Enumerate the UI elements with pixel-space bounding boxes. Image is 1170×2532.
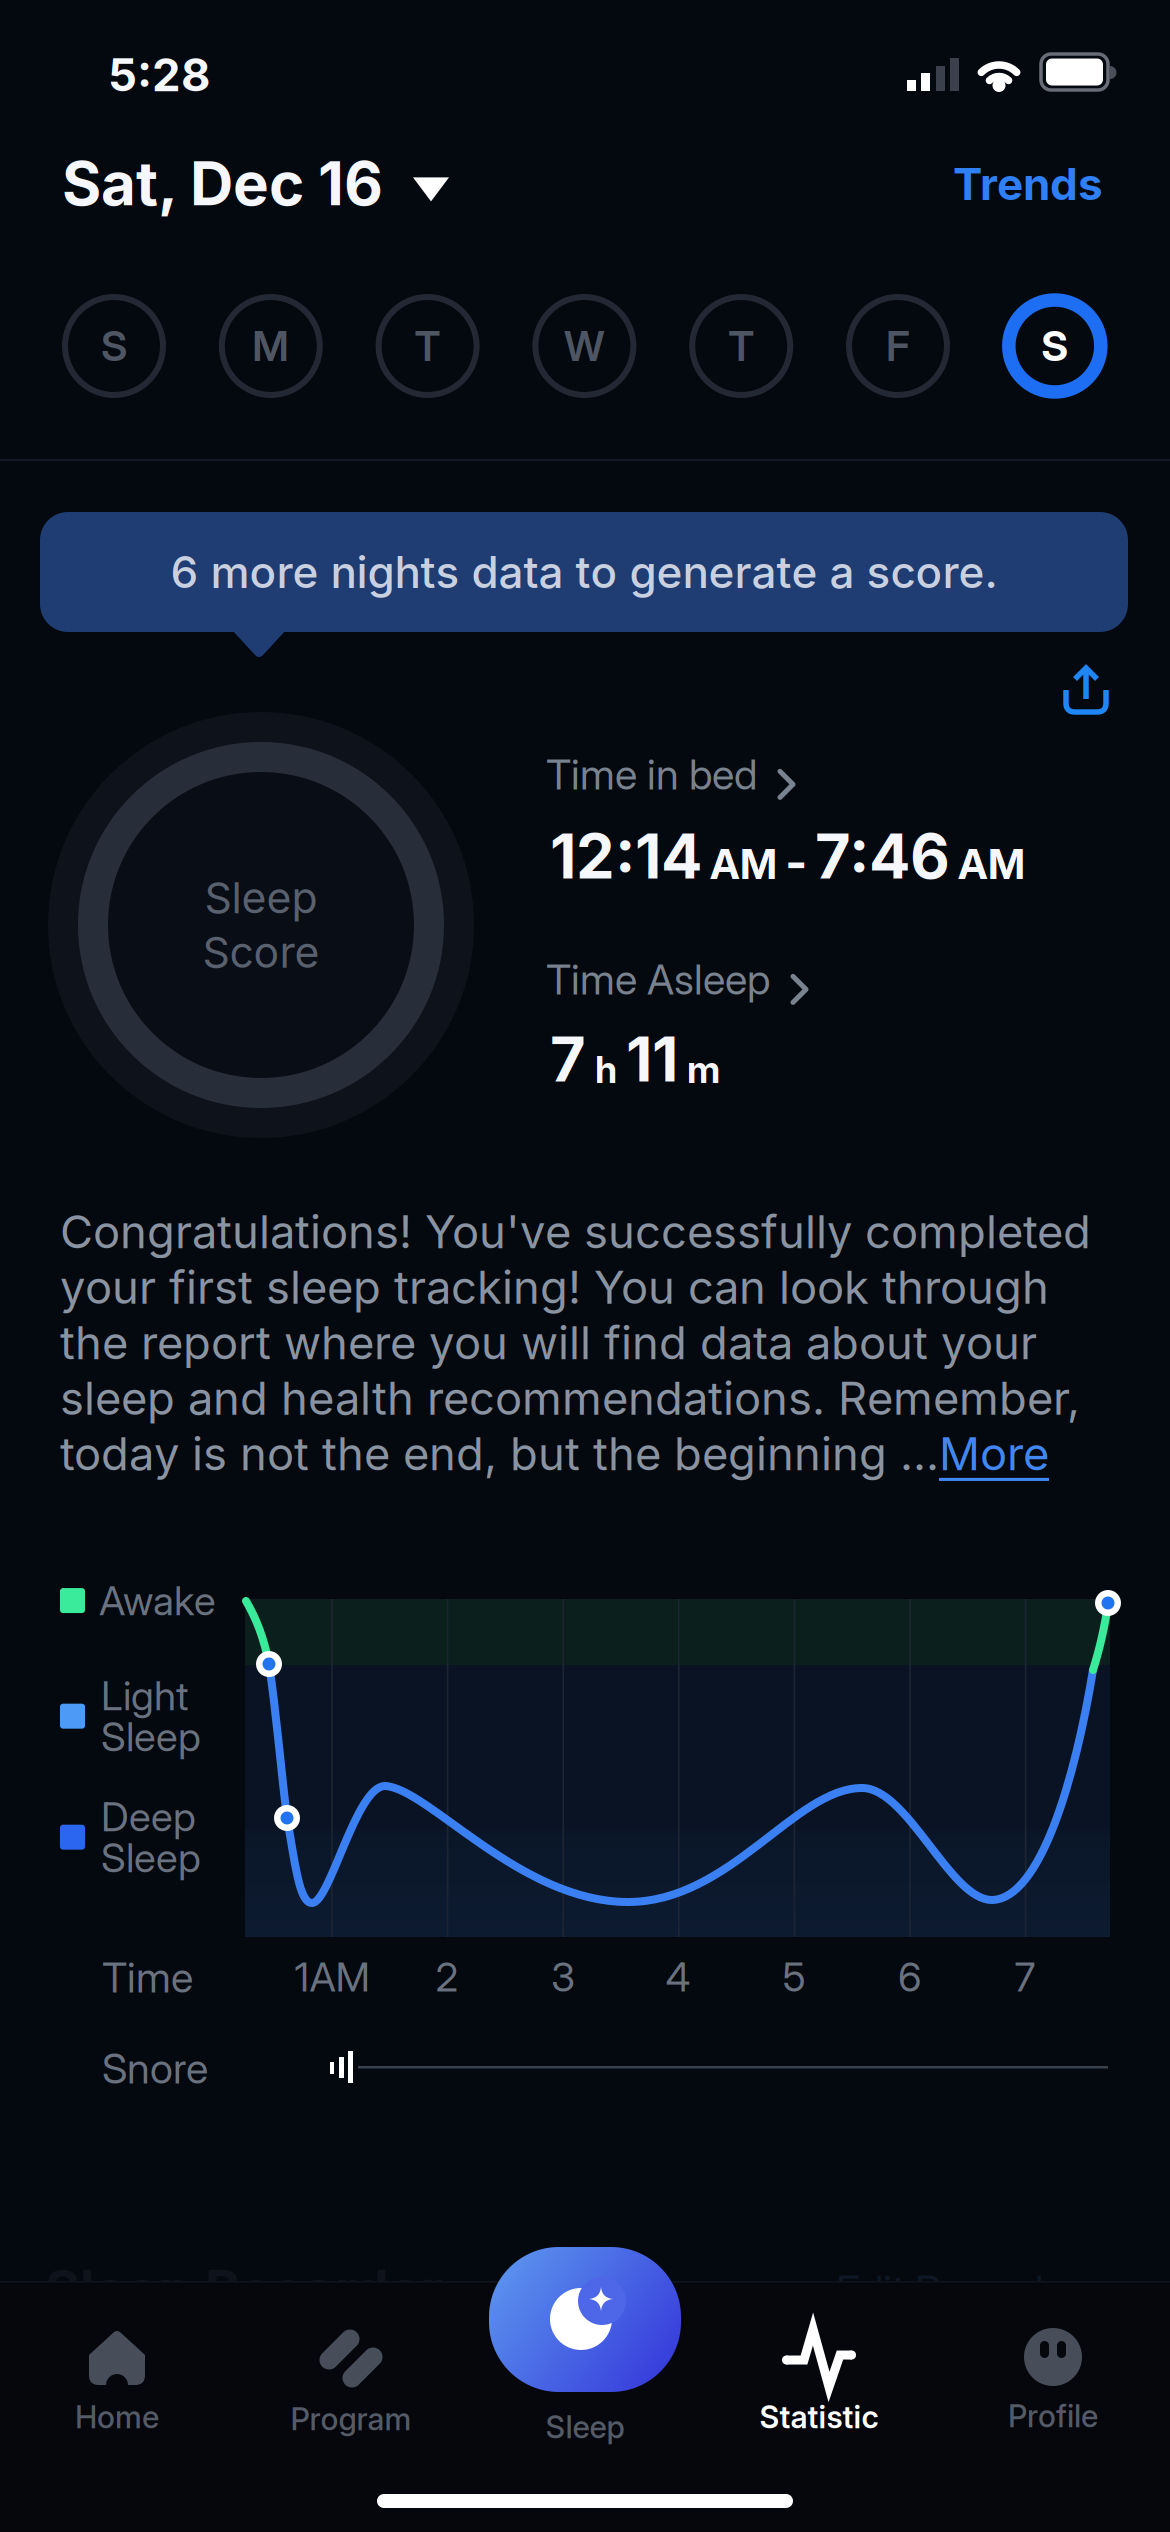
staticText: Edit Record	[836, 2266, 1043, 2315]
staticText: 4	[665, 1953, 690, 2001]
staticText: Sleep	[545, 2409, 624, 2445]
button[interactable]: T	[689, 294, 793, 398]
staticText: 6	[898, 1953, 922, 2001]
staticText: More	[939, 1427, 1049, 1480]
button[interactable]: More	[939, 1427, 1049, 1480]
staticText: Sleep Recorder	[45, 2258, 443, 2321]
staticText: 5:28	[108, 48, 211, 101]
staticText: Deep	[101, 1793, 196, 1840]
staticText: 2	[435, 1953, 458, 2001]
staticText: T	[415, 322, 441, 370]
button[interactable]: T	[376, 294, 480, 398]
staticText: 7	[1014, 1953, 1035, 2001]
staticText: Program	[290, 2401, 411, 2437]
staticText: Time	[102, 1953, 193, 2002]
staticText: F	[886, 322, 910, 370]
staticText: Profile	[1008, 2398, 1098, 2434]
staticText: W	[564, 322, 605, 370]
staticText: Sleep	[101, 1834, 201, 1881]
staticText: S	[101, 322, 127, 370]
staticText: Congratulations! You've successfully com…	[60, 1205, 1091, 1258]
staticText: 1AM	[294, 1953, 369, 2001]
button[interactable]: Trends	[953, 158, 1103, 210]
staticText: your first sleep tracking! You can look …	[60, 1260, 1049, 1314]
button[interactable]: F	[846, 294, 950, 398]
staticText: Trends	[953, 158, 1103, 210]
button[interactable]: M	[219, 294, 323, 398]
staticText: Snore	[102, 2044, 208, 2093]
button[interactable]: Home	[27, 2327, 207, 2435]
staticText: sleep and health recommendations. Rememb…	[60, 1371, 1080, 1425]
staticText: 3	[551, 1953, 575, 2001]
button[interactable]: Program	[251, 2329, 451, 2437]
staticText: 11	[626, 1023, 678, 1095]
button[interactable]	[1049, 652, 1123, 730]
staticText: 12:14	[550, 820, 702, 892]
staticText: m	[687, 1047, 720, 1091]
staticText: T	[728, 322, 754, 370]
staticText: Sleep	[101, 1713, 201, 1760]
button[interactable]	[489, 2247, 681, 2392]
button[interactable]: Time Asleep	[546, 955, 810, 1004]
staticText: AM	[958, 840, 1025, 888]
button[interactable]: Sat, Dec 16	[62, 148, 451, 219]
button[interactable]: 6 more nights data to generate a score.	[40, 512, 1128, 632]
staticText: M	[252, 322, 289, 370]
staticText: Sleep	[204, 873, 317, 923]
staticText: 7	[550, 1023, 586, 1095]
staticText: Time in bed	[546, 750, 757, 799]
staticText: Score	[202, 927, 319, 977]
staticText: AM	[710, 840, 777, 888]
staticText: Home	[75, 2399, 159, 2435]
staticText: Time Asleep	[546, 955, 770, 1004]
staticText: h	[595, 1047, 617, 1091]
staticText: today is not the end, but the beginning …	[60, 1427, 939, 1480]
staticText: Sat, Dec 16	[62, 148, 383, 219]
staticText: S	[1041, 322, 1068, 370]
staticText: 5	[782, 1953, 805, 2001]
staticText: Awake	[99, 1577, 216, 1624]
button[interactable]: Statistic	[719, 2327, 919, 2435]
staticText: -	[785, 834, 807, 890]
button[interactable]: Time in bed	[546, 750, 797, 799]
staticText: Statistic	[759, 2399, 878, 2435]
button[interactable]: S	[1003, 294, 1107, 398]
button[interactable]: W	[532, 294, 636, 398]
button[interactable]: Profile	[963, 2328, 1143, 2434]
staticText: 6 more nights data to generate a score.	[170, 546, 997, 598]
staticText: the report where you will find data abou…	[60, 1316, 1037, 1369]
staticText: 7:46	[815, 820, 950, 892]
button[interactable]: S	[62, 294, 166, 398]
staticText: Light	[101, 1672, 189, 1719]
